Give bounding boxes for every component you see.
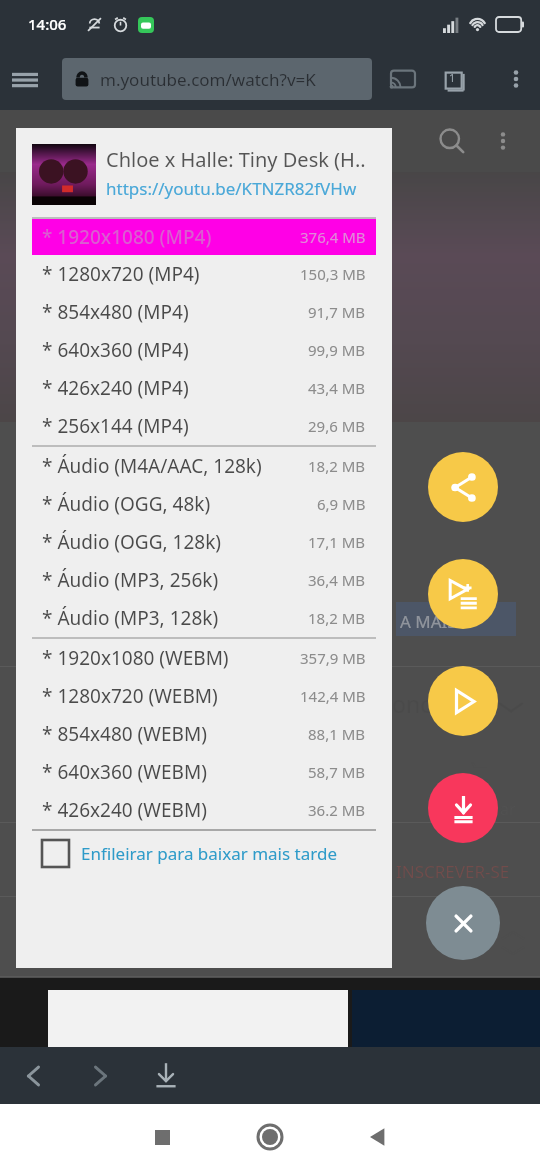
button[interactable]: More: [492, 130, 514, 152]
staticText: m.youtube.com/watch?v=K: [100, 68, 316, 91]
staticText: * Áudio (OGG, 128k): [42, 529, 308, 555]
staticText: * Áudio (M4A/AAC, 128k): [42, 453, 308, 479]
button[interactable]: m.youtube.com/watch?v=K: [62, 58, 372, 100]
button[interactable]: * 1920x1080 (WEBM): [16, 639, 392, 677]
button[interactable]: More options: [504, 67, 528, 91]
button[interactable]: Recents: [142, 1117, 182, 1157]
staticText: 17,1 MB: [308, 532, 366, 552]
button[interactable]: * 640x360 (MP4): [16, 331, 392, 369]
button[interactable]: Share: [428, 452, 498, 522]
button[interactable]: Cast: [388, 64, 418, 94]
staticText: * Áudio (MP3, 256k): [42, 567, 308, 593]
staticText: * 1920x1080 (MP4): [42, 224, 300, 250]
button[interactable]: * Áudio (M4A/AAC, 128k): [16, 447, 392, 485]
staticText: para o PagBank: [208, 1117, 341, 1140]
staticText: Transfira seu Auxílio Emergencial: [137, 1094, 411, 1117]
staticText: 142,4 MB: [300, 686, 366, 706]
button[interactable]: * 1280x720 (MP4): [16, 255, 392, 293]
button[interactable]: * 854x480 (WEBM): [16, 715, 392, 753]
button[interactable]: Download: [428, 773, 498, 843]
staticText: INSCREVER-SE: [396, 860, 510, 883]
button[interactable]: Forward: [86, 1062, 114, 1090]
staticText: * 426x240 (WEBM): [42, 797, 308, 823]
staticText: * 854x480 (WEBM): [42, 721, 308, 747]
button[interactable]: * 426x240 (MP4): [16, 369, 392, 407]
staticText: onc: [392, 688, 432, 719]
staticText: 376,4 MB: [300, 227, 366, 247]
staticText: 6,9 MB: [317, 494, 366, 514]
button[interactable]: * 640x360 (WEBM): [16, 753, 392, 791]
staticText: 1: [449, 70, 456, 85]
staticText: 36,4 MB: [308, 570, 366, 590]
staticText: * 1280x720 (WEBM): [42, 683, 300, 709]
button[interactable]: Back: [358, 1117, 398, 1157]
staticText: * Áudio (MP3, 128k): [42, 605, 308, 631]
button[interactable]: * 426x240 (WEBM): [16, 791, 392, 829]
button[interactable]: [396, 602, 516, 636]
staticText: * 256x144 (MP4): [42, 413, 308, 439]
button[interactable]: Search: [438, 127, 466, 155]
button[interactable]: * Áudio (MP3, 256k): [16, 561, 392, 599]
staticText: 29,6 MB: [308, 416, 366, 436]
staticText: * 640x360 (WEBM): [42, 759, 308, 785]
button[interactable]: Back: [20, 1062, 48, 1090]
button[interactable]: * 1920x1080 (MP4): [32, 219, 376, 255]
button[interactable]: * 256x144 (MP4): [16, 407, 392, 445]
staticText: A MAIS: [400, 610, 457, 633]
staticText: 14:06: [28, 14, 67, 34]
button[interactable]: Home: [250, 1117, 290, 1157]
staticText: 357,9 MB: [300, 648, 366, 668]
staticText: * Áudio (OGG, 48k): [42, 491, 317, 517]
button[interactable]: * 854x480 (MP4): [16, 293, 392, 331]
button[interactable]: * Áudio (OGG, 128k): [16, 523, 392, 561]
staticText: 36.2 MB: [308, 800, 366, 820]
staticText: 58,7 MB: [308, 762, 366, 782]
staticText: 18,2 MB: [308, 608, 366, 628]
staticText: * 854x480 (MP4): [42, 299, 308, 325]
button[interactable]: Menu: [11, 65, 39, 93]
staticText: 18,2 MB: [308, 456, 366, 476]
button[interactable]: Tabs: [438, 63, 470, 95]
button[interactable]: Transfira seu Auxílio Emergencial: [52, 1088, 496, 1154]
button[interactable]: Close: [426, 886, 500, 960]
button[interactable]: Add to playlist: [428, 559, 498, 629]
staticText: * 1920x1080 (WEBM): [42, 645, 300, 671]
staticText: 150,3 MB: [300, 264, 366, 284]
staticText: 99,9 MB: [308, 340, 366, 360]
button[interactable]: * 1280x720 (WEBM): [16, 677, 392, 715]
staticText: Enfileirar para baixar mais tarde: [81, 842, 337, 865]
staticText: 88,1 MB: [308, 724, 366, 744]
button[interactable]: * Áudio (MP3, 128k): [16, 599, 392, 637]
staticText: * 1280x720 (MP4): [42, 261, 300, 287]
button[interactable]: Downloads: [150, 1060, 182, 1092]
button[interactable]: Enfileirar para baixar mais tarde: [42, 831, 392, 875]
staticText: 43,4 MB: [308, 378, 366, 398]
staticText: Chloe x Halle: Tiny Desk (H..: [106, 146, 366, 173]
button[interactable]: * Áudio (OGG, 48k): [16, 485, 392, 523]
button[interactable]: Play: [428, 666, 498, 736]
staticText: * 426x240 (MP4): [42, 375, 308, 401]
button[interactable]: https://youtu.be/KTNZR82fVHw: [106, 177, 357, 200]
staticText: 91,7 MB: [308, 302, 366, 322]
staticText: * 640x360 (MP4): [42, 337, 308, 363]
